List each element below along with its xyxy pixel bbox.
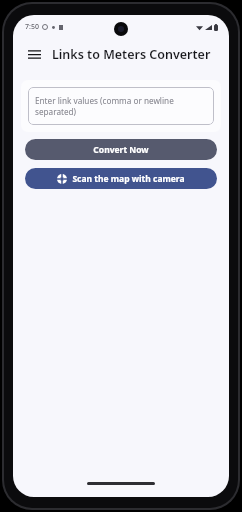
staticText: Convert Now bbox=[93, 144, 149, 156]
button[interactable]: Convert Now bbox=[25, 139, 217, 160]
staticText: Enter link values (comma or newline sepa… bbox=[35, 95, 207, 117]
button[interactable]: Enter link values (comma or newline sepa… bbox=[28, 87, 214, 125]
staticText: Links to Meters Converter bbox=[52, 46, 211, 63]
button[interactable]: Scan the map with camera bbox=[25, 168, 217, 189]
button[interactable]: Open navigation menu bbox=[24, 44, 44, 64]
staticText: Scan the map with camera bbox=[72, 173, 185, 185]
staticText: 7:50 bbox=[25, 22, 39, 32]
